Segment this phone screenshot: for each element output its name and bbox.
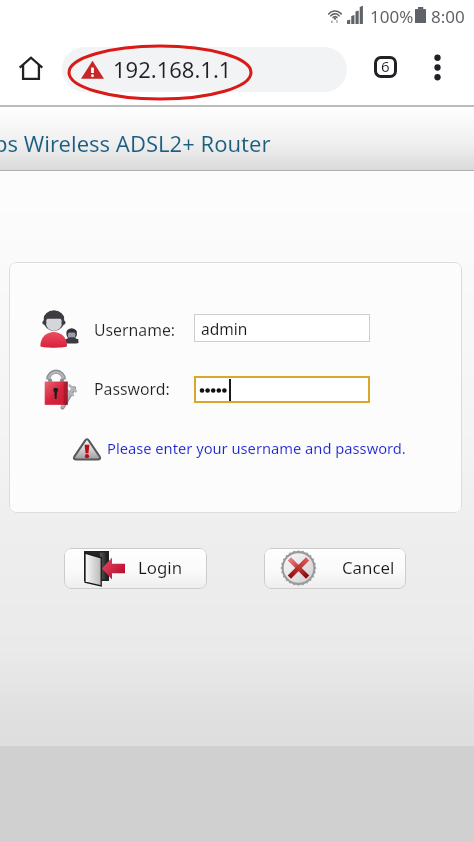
staticText: ps Wireless ADSL2+ Router xyxy=(0,128,271,158)
staticText: 100% xyxy=(370,5,414,28)
staticText: Login xyxy=(138,556,183,579)
button[interactable]: 192.168.1.1 xyxy=(62,47,347,92)
staticText: admin xyxy=(201,318,248,339)
button[interactable]: Home xyxy=(7,44,55,92)
staticText: Please enter your username and password. xyxy=(107,438,406,458)
button[interactable]: Cancel xyxy=(264,548,406,589)
staticText: 192.168.1.1 xyxy=(113,54,232,84)
staticText: Password: xyxy=(94,378,170,400)
button[interactable]: More options xyxy=(415,45,459,89)
staticText: Cancel xyxy=(342,556,395,579)
staticText: 6 xyxy=(381,56,390,76)
button[interactable]: Login xyxy=(64,548,207,589)
staticText: 8:00 xyxy=(431,5,465,28)
button[interactable]: Tabs xyxy=(363,45,407,89)
staticText: Username: xyxy=(94,319,176,341)
